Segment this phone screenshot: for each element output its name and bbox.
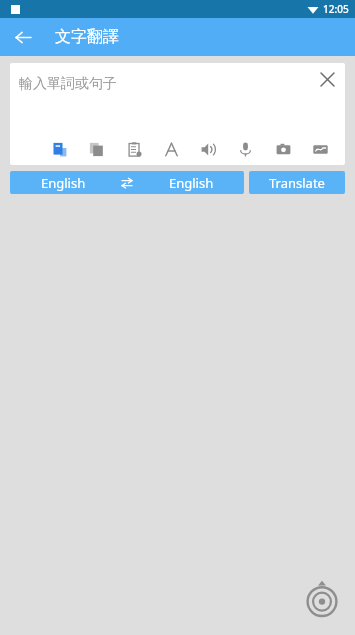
button[interactable]: Camera <box>272 138 294 160</box>
button[interactable]: Text size <box>160 138 182 160</box>
button[interactable]: Listen <box>197 138 219 160</box>
button[interactable]: English <box>10 171 244 194</box>
button[interactable]: Translate <box>249 171 345 194</box>
button[interactable]: Clear text <box>313 65 341 93</box>
staticText: 12:05 <box>323 2 349 16</box>
button[interactable]: Translate document <box>48 138 70 160</box>
button[interactable]: Handwriting <box>309 138 331 160</box>
button[interactable]: Copy <box>85 138 107 160</box>
button[interactable]: Detect language <box>301 577 343 619</box>
button[interactable]: Back <box>8 22 38 52</box>
staticText: 文字翻譯 <box>55 27 119 47</box>
staticText: 輸入單詞或句子 <box>19 75 117 93</box>
button[interactable]: Voice input <box>234 138 256 160</box>
staticText: English <box>41 174 86 192</box>
staticText: Translate <box>269 174 325 192</box>
staticText: English <box>169 174 214 192</box>
button[interactable]: Clipboard <box>123 138 145 160</box>
